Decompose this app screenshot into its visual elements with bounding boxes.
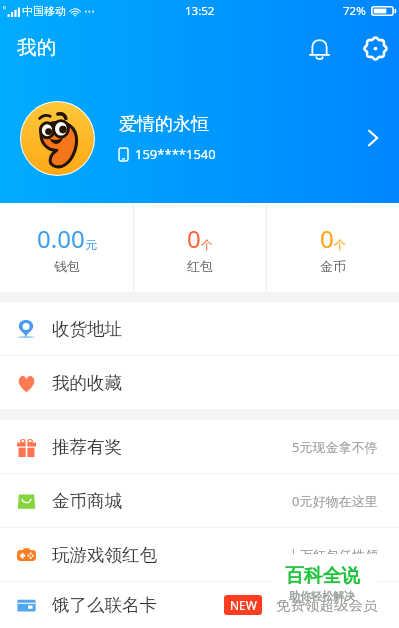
button[interactable]: 金币商城 bbox=[0, 474, 399, 527]
button[interactable]: 推荐有奖 bbox=[0, 420, 399, 473]
staticText: 免费领超级会员 bbox=[276, 596, 378, 614]
button[interactable]: 我的收藏 bbox=[0, 356, 399, 409]
staticText: 钱包 bbox=[54, 258, 80, 274]
button[interactable]: 爱情的永恒 bbox=[0, 73, 399, 203]
button[interactable]: Notifications bbox=[297, 26, 341, 70]
staticText: 金币商城 bbox=[52, 490, 122, 512]
staticText: 0.00 bbox=[37, 222, 85, 255]
button[interactable]: 0 bbox=[134, 222, 266, 274]
staticText: 金币 bbox=[320, 258, 346, 274]
staticText: 收货地址 bbox=[52, 318, 122, 340]
button[interactable]: 收货地址 bbox=[0, 302, 399, 355]
staticText: 红包 bbox=[187, 258, 213, 274]
staticText: NEW bbox=[230, 597, 257, 613]
staticText: 百科全说 bbox=[285, 564, 360, 588]
staticText: ⋯ bbox=[84, 5, 95, 18]
staticText: 推荐有奖 bbox=[52, 436, 122, 458]
staticText: 我的收藏 bbox=[52, 372, 122, 394]
staticText: 助你轻松解决 bbox=[289, 589, 355, 603]
staticText: 十万红包任性领 bbox=[287, 547, 378, 563]
staticText: 13:52 bbox=[185, 3, 215, 19]
staticText: 159****1540 bbox=[135, 145, 216, 163]
staticText: 个 bbox=[201, 237, 213, 252]
staticText: 中国移动 bbox=[22, 4, 66, 18]
staticText: 饿了么联名卡 bbox=[52, 594, 157, 616]
button[interactable]: Settings bbox=[353, 26, 397, 70]
staticText: 0 bbox=[320, 222, 334, 255]
staticText: 玩游戏领红包 bbox=[52, 544, 157, 566]
staticText: 5元现金拿不停 bbox=[292, 438, 378, 456]
staticText: 元 bbox=[85, 237, 97, 252]
staticText: 个 bbox=[334, 237, 346, 252]
staticText: 0元好物在这里 bbox=[292, 492, 378, 510]
staticText: 我的 bbox=[17, 35, 56, 60]
staticText: 72% bbox=[343, 3, 366, 19]
staticText: 0 bbox=[187, 222, 201, 255]
button[interactable]: 玩游戏领红包 bbox=[0, 528, 399, 581]
button[interactable]: 饿了么联名卡 bbox=[0, 582, 399, 628]
button[interactable]: 0.00 bbox=[0, 222, 133, 274]
staticText: 爱情的永恒 bbox=[119, 113, 209, 136]
button[interactable]: 0 bbox=[267, 222, 399, 274]
